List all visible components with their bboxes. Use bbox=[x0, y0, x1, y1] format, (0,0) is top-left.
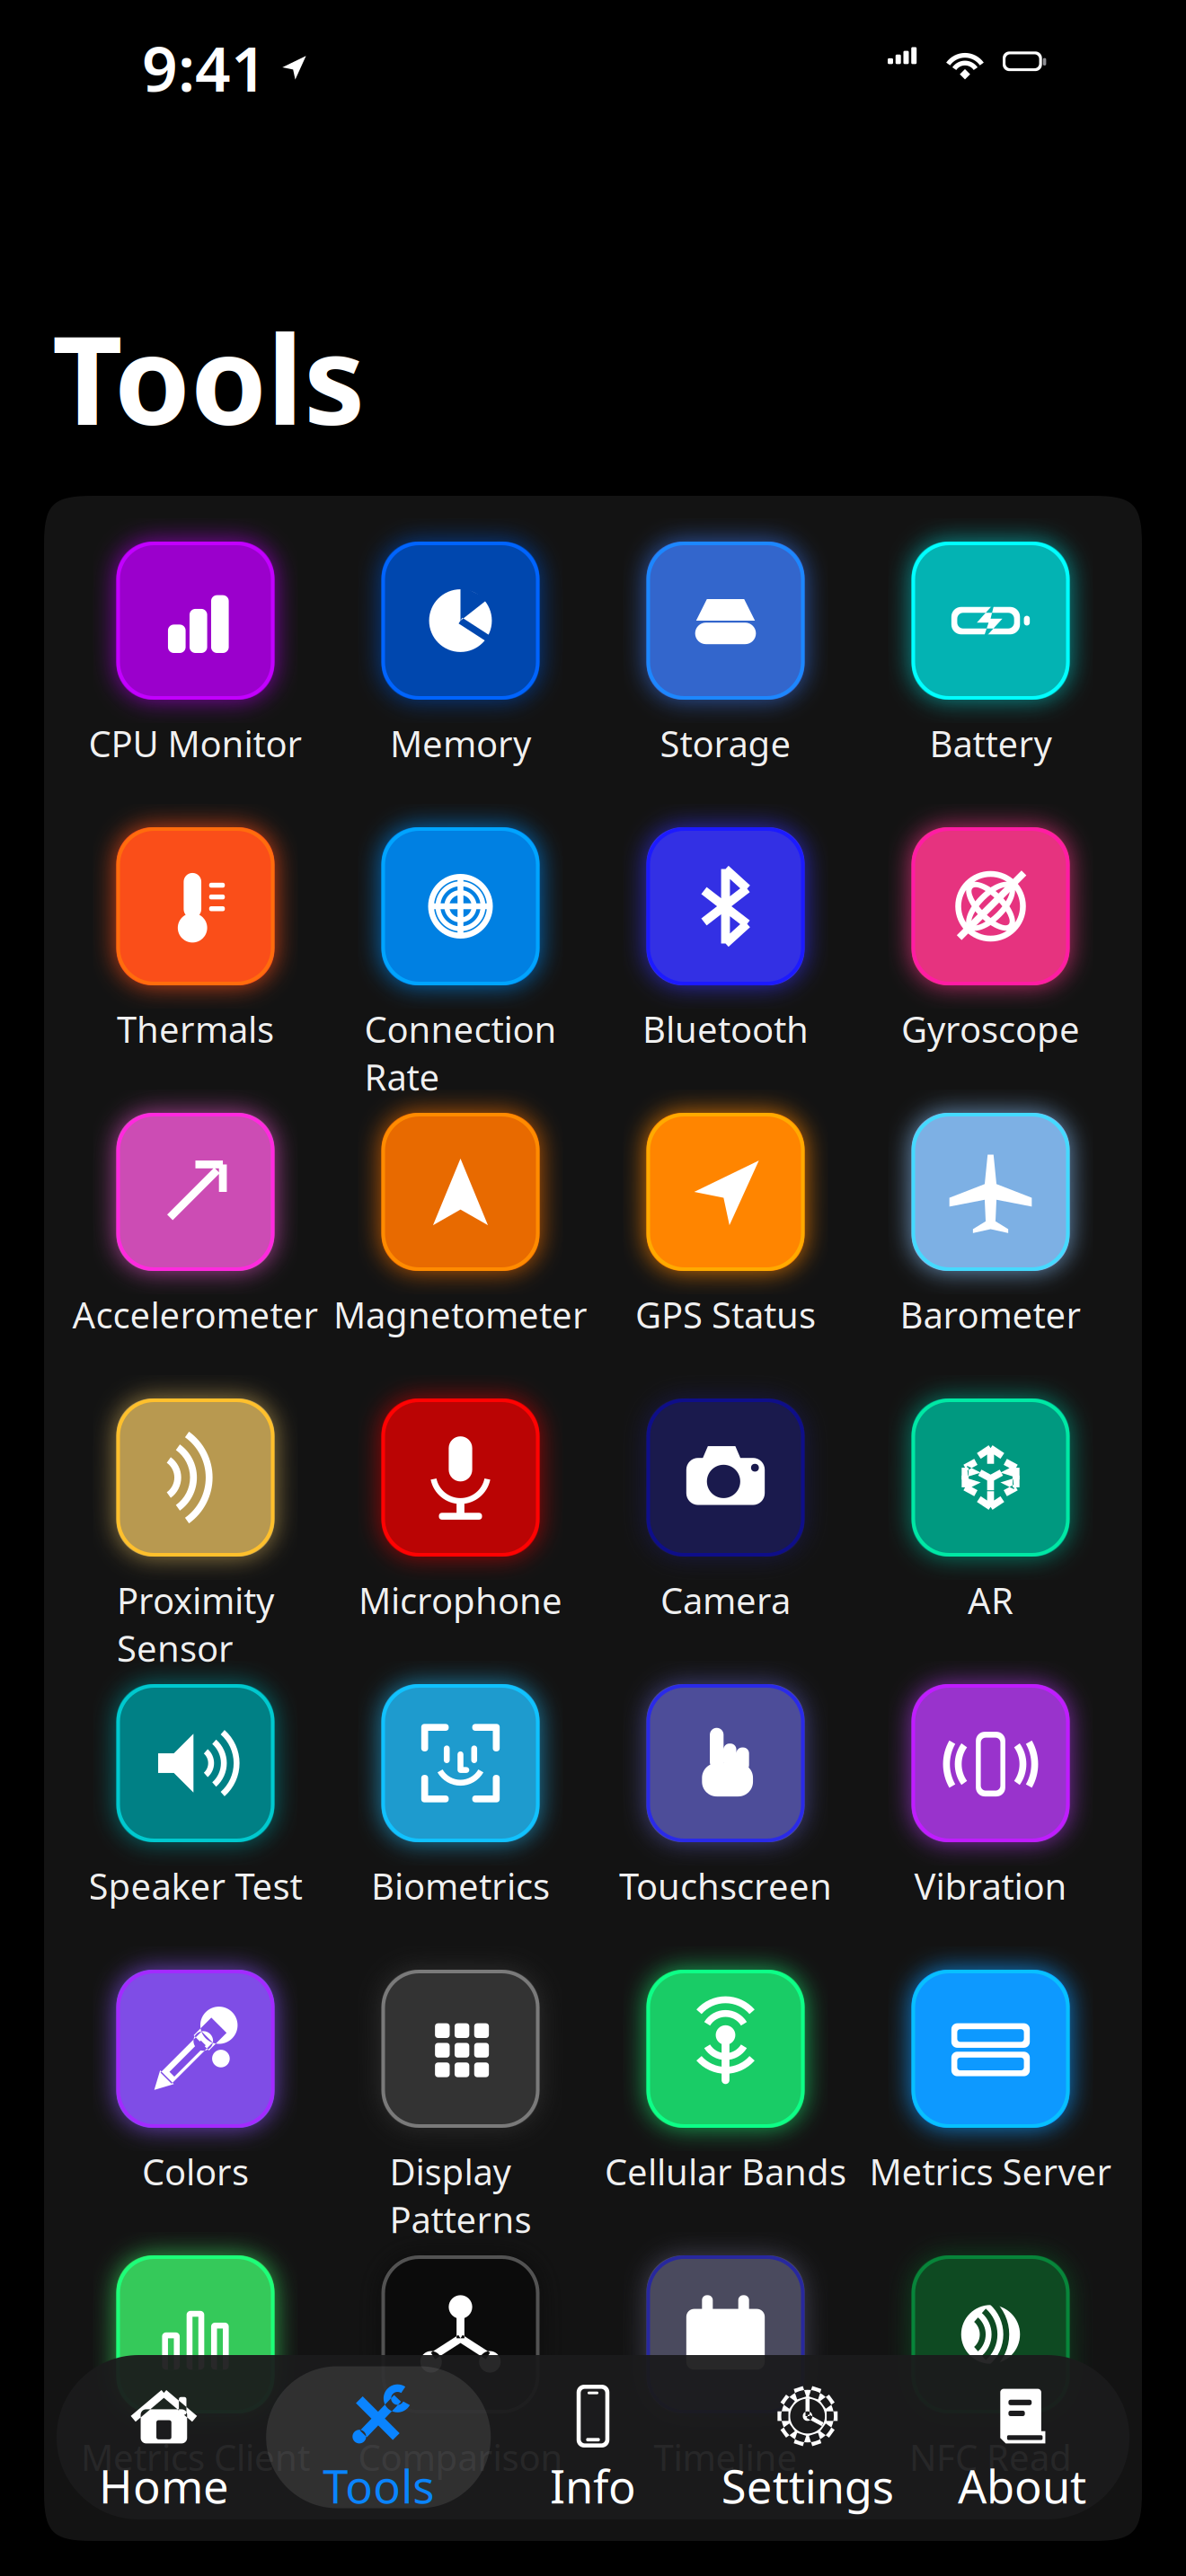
staticText: Vibration bbox=[914, 1862, 1067, 1910]
staticText: Tools bbox=[52, 296, 365, 459]
button[interactable]: Cellular Bands bbox=[593, 1970, 858, 2255]
staticText: Bluetooth bbox=[642, 1005, 809, 1053]
button[interactable]: Microphone bbox=[328, 1398, 593, 1684]
button[interactable]: CPU Monitor bbox=[63, 542, 328, 827]
staticText: Memory bbox=[390, 719, 531, 767]
staticText: Colors bbox=[142, 2148, 249, 2195]
button[interactable]: Proximity Sensor bbox=[63, 1398, 328, 1684]
staticText: CPU Monitor bbox=[89, 719, 302, 767]
staticText: Tools bbox=[323, 2456, 434, 2516]
button[interactable]: Metrics Client bbox=[63, 2255, 328, 2541]
staticText: Barometer bbox=[900, 1291, 1081, 1338]
staticText: Touchscreen bbox=[619, 1862, 832, 1910]
staticText: Cellular Bands bbox=[605, 2148, 846, 2195]
button[interactable]: Accelerometer bbox=[63, 1113, 328, 1398]
staticText: About bbox=[958, 2456, 1086, 2516]
button[interactable]: Magnetometer bbox=[328, 1113, 593, 1398]
button[interactable]: Info bbox=[486, 2355, 700, 2519]
staticText: Accelerometer bbox=[72, 1291, 319, 1338]
staticText: Connection Rate bbox=[364, 1005, 557, 1100]
staticText: NFC Read bbox=[909, 2433, 1072, 2481]
button[interactable]: Bluetooth bbox=[593, 827, 858, 1113]
staticText: Proximity Sensor bbox=[117, 1576, 274, 1672]
button[interactable]: Settings bbox=[700, 2355, 915, 2519]
button[interactable]: Timeline bbox=[593, 2255, 858, 2541]
staticText: Battery bbox=[929, 719, 1052, 767]
staticText: GPS Status bbox=[635, 1291, 816, 1338]
button[interactable]: Colors bbox=[63, 1970, 328, 2255]
button[interactable]: Speaker Test bbox=[63, 1684, 328, 1970]
staticText: 9:41 bbox=[142, 26, 267, 109]
button[interactable]: Camera bbox=[593, 1398, 858, 1684]
button[interactable]: Comparison bbox=[328, 2255, 593, 2541]
button[interactable]: Display Patterns bbox=[328, 1970, 593, 2255]
staticText: AR bbox=[968, 1576, 1013, 1624]
button[interactable]: Memory bbox=[328, 542, 593, 827]
staticText: Microphone bbox=[358, 1576, 562, 1624]
button[interactable]: Metrics Server bbox=[858, 1970, 1123, 2255]
button[interactable]: Barometer bbox=[858, 1113, 1123, 1398]
staticText: Home bbox=[99, 2456, 229, 2516]
staticText: Speaker Test bbox=[89, 1862, 302, 1910]
staticText: Info bbox=[550, 2456, 636, 2516]
button[interactable]: Touchscreen bbox=[593, 1684, 858, 1970]
button[interactable]: Vibration bbox=[858, 1684, 1123, 1970]
button[interactable]: Gyroscope bbox=[858, 827, 1123, 1113]
staticText: Display Patterns bbox=[389, 2148, 531, 2243]
button[interactable]: GPS Status bbox=[593, 1113, 858, 1398]
button[interactable]: Thermals bbox=[63, 827, 328, 1113]
staticText: Timeline bbox=[654, 2433, 797, 2481]
button[interactable]: Battery bbox=[858, 542, 1123, 827]
staticText: Biometrics bbox=[371, 1862, 550, 1910]
staticText: Camera bbox=[660, 1576, 791, 1624]
staticText: Settings bbox=[721, 2456, 894, 2516]
button[interactable]: Biometrics bbox=[328, 1684, 593, 1970]
staticText: Comparison bbox=[358, 2433, 563, 2481]
button[interactable]: Tools bbox=[271, 2355, 486, 2519]
button[interactable]: Connection Rate bbox=[328, 827, 593, 1113]
staticText: Metrics Server bbox=[869, 2148, 1112, 2195]
button[interactable]: Storage bbox=[593, 542, 858, 827]
button[interactable]: Home bbox=[57, 2355, 271, 2519]
staticText: Gyroscope bbox=[901, 1005, 1080, 1053]
button[interactable]: NFC Read bbox=[858, 2255, 1123, 2541]
button[interactable]: AR bbox=[858, 1398, 1123, 1684]
staticText: Thermals bbox=[117, 1005, 274, 1053]
staticText: Metrics Client bbox=[81, 2433, 310, 2481]
staticText: Storage bbox=[660, 719, 791, 767]
staticText: Magnetometer bbox=[333, 1291, 588, 1338]
button[interactable]: About bbox=[915, 2355, 1129, 2519]
